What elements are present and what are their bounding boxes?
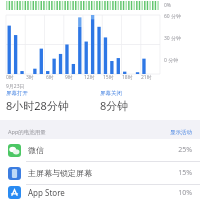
staticText: 10% xyxy=(178,188,192,198)
button[interactable]: 微信 xyxy=(0,139,200,161)
staticText: 60 分钟 xyxy=(164,13,182,20)
staticText: 显示活动 xyxy=(170,129,192,136)
staticText: 6时 xyxy=(46,74,54,81)
staticText: 25% xyxy=(178,145,192,155)
staticText: 0时 xyxy=(6,74,14,81)
staticText: 8小时28分钟 xyxy=(6,98,69,113)
staticText: 30 分钟 xyxy=(164,35,182,42)
staticText: 屏幕打开 xyxy=(6,90,28,97)
staticText: 3时 xyxy=(26,74,34,81)
other: 微信 xyxy=(8,144,21,157)
staticText: 8分钟 xyxy=(100,98,129,113)
staticText: 15% xyxy=(178,168,192,178)
staticText: App Store xyxy=(28,187,65,198)
staticText: 9月23日 xyxy=(6,83,25,90)
staticText: App的电池用量 xyxy=(8,128,46,136)
staticText: 12时 xyxy=(84,74,95,81)
staticText: 15时 xyxy=(103,74,114,81)
staticText: 9时 xyxy=(65,74,73,81)
button[interactable]: 主屏幕与锁定屏幕 xyxy=(0,162,200,184)
staticText: 主屏幕与锁定屏幕 xyxy=(28,168,92,178)
staticText: 21时 xyxy=(141,74,152,81)
button[interactable]: 显示活动 xyxy=(170,129,192,136)
staticText: 0 分钟 xyxy=(164,57,179,64)
staticText: 0% xyxy=(164,2,200,9)
other: 主屏幕与锁定屏幕 xyxy=(8,167,21,180)
staticText: 微信 xyxy=(28,145,44,155)
other: App Store xyxy=(8,186,21,199)
staticText: 18时 xyxy=(122,74,133,81)
button[interactable]: App Store xyxy=(0,185,200,200)
staticText: 屏幕关闭 xyxy=(100,90,122,97)
